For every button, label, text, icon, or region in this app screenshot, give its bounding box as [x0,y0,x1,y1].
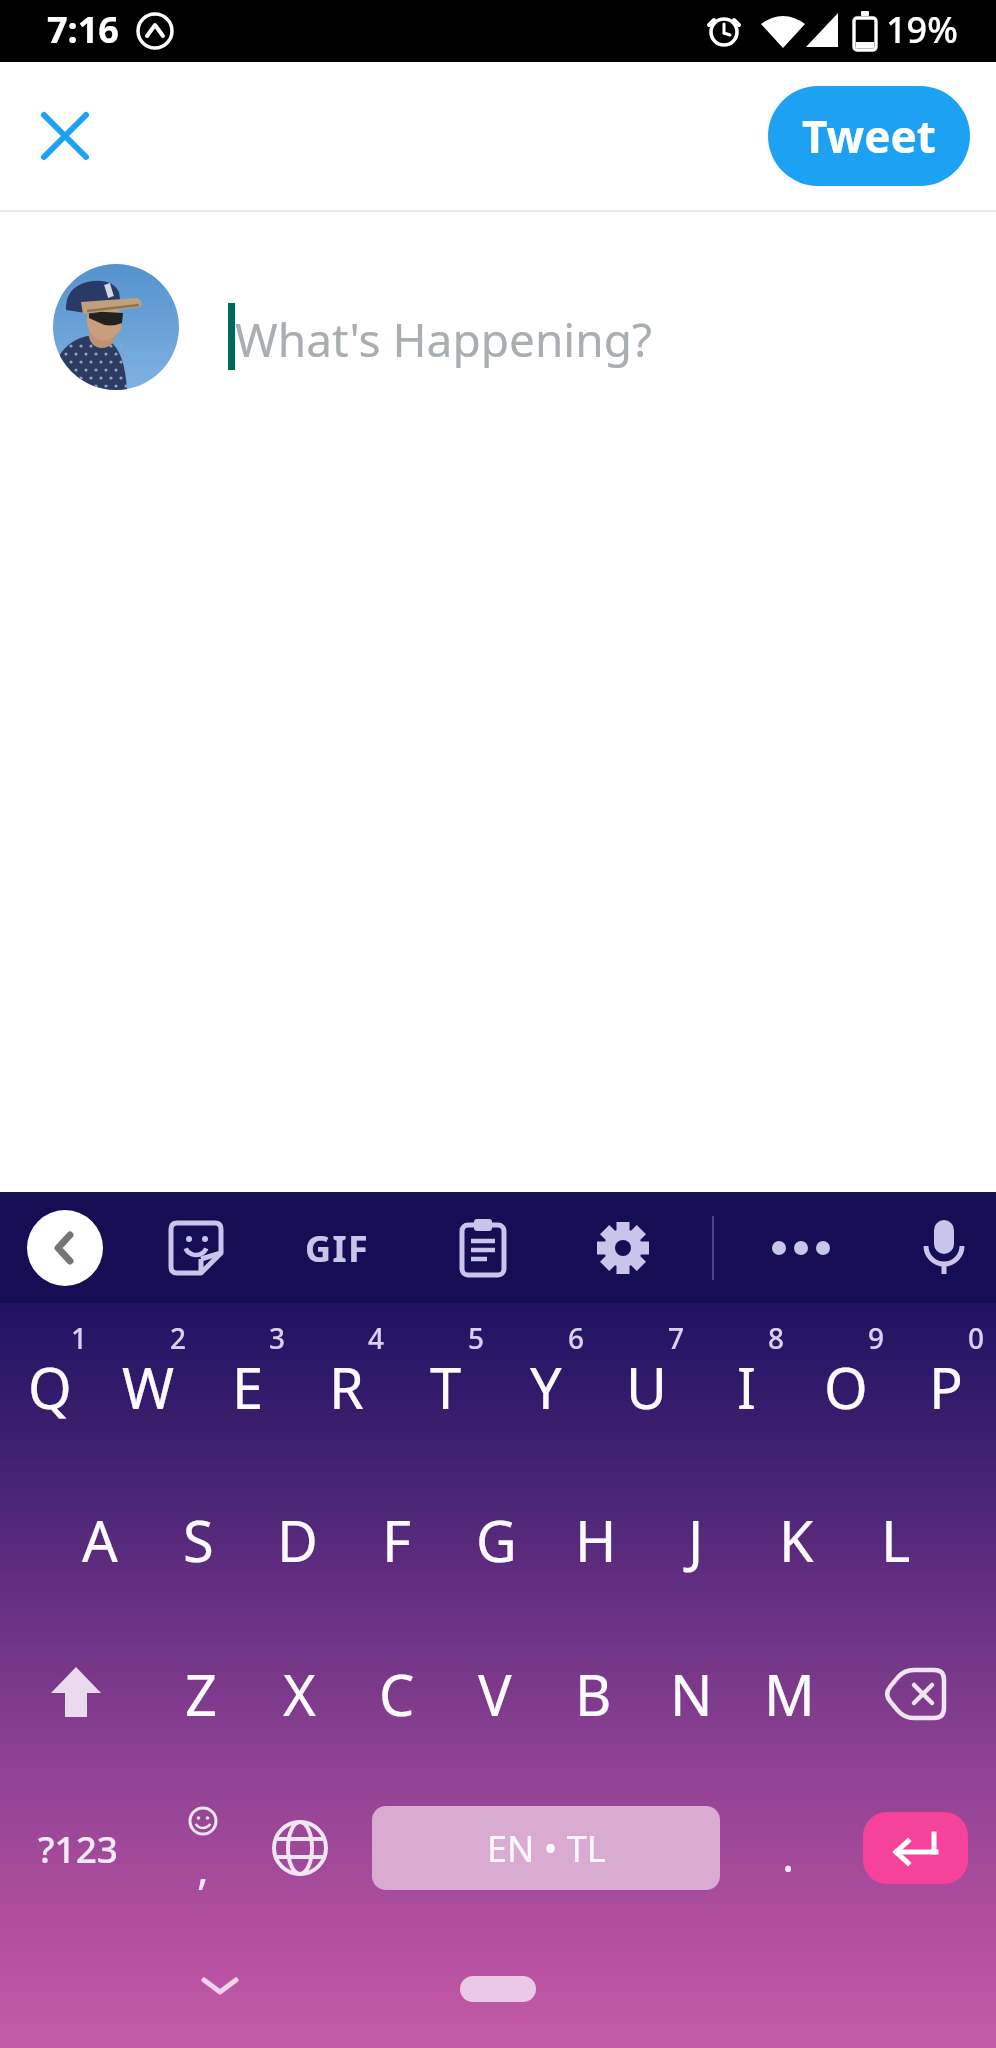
button[interactable]: 8 [696,1303,796,1462]
button[interactable]: 0 [896,1303,996,1462]
button[interactable]: A [50,1462,149,1617]
staticText: T [430,1349,462,1425]
staticText: 5 [468,1319,485,1357]
staticText: U [626,1349,667,1425]
button[interactable]: D [248,1462,347,1617]
staticText: V [478,1656,512,1732]
staticText: , [197,1837,209,1897]
button[interactable]: L [846,1462,946,1617]
staticText: 2 [170,1319,187,1357]
button[interactable]: EN • TL [372,1806,720,1890]
staticText: P [929,1349,963,1425]
staticText: N [670,1656,713,1732]
button[interactable]: 1 [0,1303,99,1462]
staticText: D [277,1502,318,1578]
staticText: R [329,1349,364,1425]
button[interactable]: V [446,1617,544,1771]
button[interactable] [165,1217,227,1279]
staticText: 0 [968,1319,985,1357]
button[interactable]: 2 [99,1303,198,1462]
button[interactable]: F [347,1462,446,1617]
staticText: 7 [668,1319,685,1357]
staticText: S [183,1502,214,1578]
staticText: 19% [886,5,958,54]
button[interactable]: X [250,1617,348,1771]
staticText: 6 [568,1319,585,1357]
staticText: E [232,1349,264,1425]
button[interactable]: , [155,1793,247,1903]
button[interactable]: M [740,1617,838,1771]
staticText: J [688,1502,704,1578]
button[interactable] [460,1976,536,2002]
staticText: 7:16 [47,5,119,54]
staticText: O [824,1349,868,1425]
button[interactable] [912,1216,976,1280]
button[interactable]: 5 [396,1303,496,1462]
staticText: I [737,1349,756,1425]
button[interactable]: Z [152,1617,250,1771]
staticText: GIF [305,1224,370,1273]
button[interactable] [863,1812,968,1884]
button[interactable] [27,1210,103,1286]
button[interactable]: What's Happening? [228,264,996,390]
button[interactable]: S [149,1462,248,1617]
staticText: F [382,1502,412,1578]
button[interactable] [592,1217,654,1279]
staticText: L [881,1502,911,1578]
staticText: 1 [71,1319,88,1357]
button[interactable]: 3 [198,1303,297,1462]
button[interactable]: H [546,1462,646,1617]
staticText: A [82,1502,118,1578]
button[interactable]: Tweet [768,86,970,186]
button[interactable]: G [446,1462,546,1617]
button[interactable] [255,1803,345,1893]
staticText: 9 [868,1319,885,1357]
staticText: K [779,1502,814,1578]
button[interactable] [838,1617,996,1771]
button[interactable] [53,264,179,390]
button[interactable] [36,107,94,165]
staticText: Z [185,1656,218,1732]
staticText: Tweet [802,106,936,166]
button[interactable]: 9 [796,1303,896,1462]
button[interactable]: N [642,1617,740,1771]
button[interactable]: B [544,1617,642,1771]
button[interactable]: 6 [496,1303,596,1462]
staticText: X [283,1656,316,1732]
staticText: 4 [368,1319,385,1357]
button[interactable]: J [646,1462,746,1617]
staticText: Q [28,1349,72,1425]
staticText: Y [530,1349,562,1425]
staticText: H [575,1502,617,1578]
staticText: W [122,1349,175,1425]
button[interactable] [0,1617,152,1771]
staticText: ?123 [38,1823,119,1873]
button[interactable] [762,1209,840,1287]
button[interactable]: 4 [297,1303,396,1462]
staticText: 3 [269,1319,286,1357]
staticText: M [764,1656,815,1732]
button[interactable]: 7 [596,1303,696,1462]
button[interactable]: K [746,1462,846,1617]
staticText: What's Happening? [235,308,652,371]
staticText: G [476,1502,517,1578]
button[interactable] [452,1217,514,1279]
staticText: B [575,1656,612,1732]
button[interactable] [186,1953,254,2021]
button[interactable]: ?123 [30,1808,126,1888]
staticText: 8 [768,1319,785,1357]
staticText: . [782,1823,795,1886]
button[interactable]: GIF [295,1206,379,1290]
staticText: EN • TL [487,1824,606,1873]
button[interactable]: C [348,1617,446,1771]
staticText: C [379,1656,415,1732]
